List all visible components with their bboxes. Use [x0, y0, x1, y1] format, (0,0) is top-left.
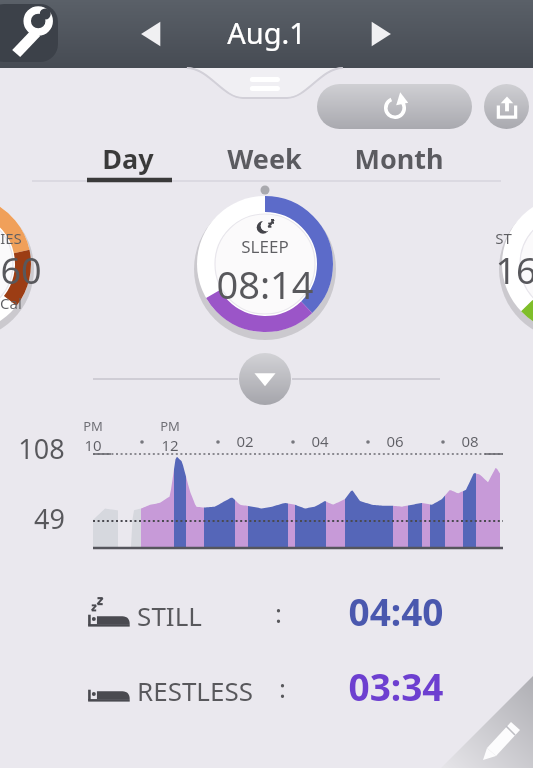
button[interactable]: Expand	[239, 353, 291, 405]
staticText: Day	[102, 140, 154, 177]
button[interactable]: Month	[339, 136, 459, 180]
button[interactable]: Refresh	[317, 84, 472, 129]
button[interactable]: Day	[68, 136, 188, 180]
staticText: SLEEP	[241, 235, 289, 258]
staticText: 10	[84, 435, 102, 455]
staticText: 12	[161, 435, 179, 455]
staticText: :	[279, 670, 286, 705]
button[interactable]: STILL	[85, 588, 485, 640]
staticText: 08	[461, 431, 479, 451]
staticText: 06	[386, 431, 404, 451]
staticText: 08:14	[216, 258, 314, 310]
staticText: Cal	[0, 293, 22, 313]
staticText: Week	[227, 140, 302, 177]
staticText: 02	[236, 431, 254, 451]
button[interactable]: Next day	[354, 8, 406, 60]
button[interactable]: Week	[204, 136, 324, 180]
button[interactable]: Share	[484, 84, 529, 129]
button[interactable]: SLEEP	[200, 199, 330, 329]
button[interactable]: Previous day	[126, 8, 178, 60]
staticText: PM	[160, 417, 180, 435]
staticText: 16	[495, 246, 533, 295]
staticText: STILL	[137, 598, 202, 633]
button[interactable]: RESTLESS	[85, 663, 485, 715]
staticText: 49	[34, 500, 65, 537]
staticText: :	[275, 595, 282, 630]
staticText: Month	[354, 140, 444, 177]
staticText: 04	[311, 431, 329, 451]
staticText: PM	[83, 417, 103, 435]
staticText: Aug.1	[227, 13, 306, 52]
staticText: 03:34	[348, 661, 444, 711]
button[interactable]: Settings	[0, 4, 58, 62]
staticText: IES	[0, 228, 22, 248]
staticText: ST	[495, 228, 512, 248]
button[interactable]: Edit	[0, 0, 533, 768]
staticText: 108	[18, 430, 65, 467]
staticText: 04:40	[348, 586, 444, 636]
staticText: RESTLESS	[137, 673, 253, 708]
staticText: 60	[0, 246, 42, 295]
